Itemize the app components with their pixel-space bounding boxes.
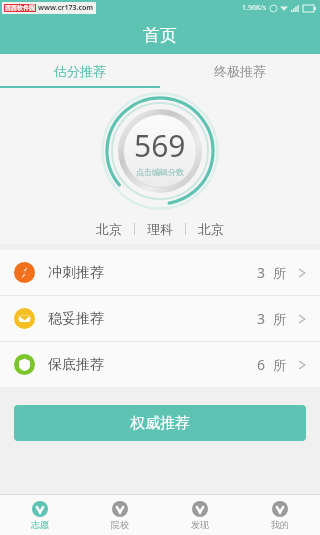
button[interactable]: 点击编辑分数: [101, 92, 219, 210]
staticText: 所: [273, 357, 286, 373]
staticText: 所: [273, 311, 286, 327]
staticText: 3: [257, 309, 266, 328]
staticText: www.cr173.com: [38, 3, 94, 13]
staticText: 冲刺推荐: [48, 264, 104, 282]
staticText: 志愿: [31, 519, 49, 530]
staticText: 终极推荐: [214, 63, 266, 79]
staticText: 发现: [191, 519, 209, 530]
staticText: 首页: [143, 25, 177, 46]
staticText: 所: [273, 265, 286, 281]
button[interactable]: 冲刺推荐: [0, 250, 320, 295]
staticText: 西西软件园: [5, 4, 35, 12]
staticText: 稳妥推荐: [48, 310, 104, 328]
staticText: 569: [134, 125, 186, 166]
button[interactable]: 稳妥推荐: [0, 296, 320, 341]
staticText: 保底推荐: [48, 356, 104, 374]
button[interactable]: 院校: [80, 495, 160, 535]
staticText: 1.96K/s: [242, 3, 267, 13]
staticText: 6: [257, 355, 266, 374]
staticText: 估分推荐: [54, 63, 106, 79]
staticText: 权威推荐: [130, 414, 190, 433]
staticText: 院校: [111, 519, 129, 530]
button[interactable]: 北京: [0, 214, 320, 244]
button[interactable]: 估分推荐: [0, 54, 160, 88]
button[interactable]: 我的: [240, 495, 320, 535]
staticText: 3: [257, 263, 266, 282]
staticText: 点击编辑分数: [136, 167, 184, 177]
button[interactable]: 终极推荐: [160, 54, 320, 88]
button[interactable]: 保底推荐: [0, 342, 320, 387]
button[interactable]: 发现: [160, 495, 240, 535]
staticText: 我的: [271, 519, 289, 530]
staticText: 北京: [198, 221, 224, 237]
button[interactable]: 志愿: [0, 495, 80, 535]
staticText: 北京: [96, 221, 122, 237]
button[interactable]: 权威推荐: [14, 405, 306, 441]
staticText: 理科: [147, 221, 173, 237]
